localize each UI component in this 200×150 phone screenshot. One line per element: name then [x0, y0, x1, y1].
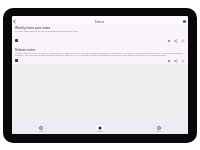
staticText: Chat	[97, 130, 102, 133]
button[interactable]: More	[181, 59, 185, 63]
button[interactable]: Weekly team sync notes	[12, 24, 188, 46]
button[interactable]: Star	[167, 39, 171, 43]
button[interactable]: Meet	[129, 122, 188, 134]
button[interactable]: Share	[174, 59, 178, 63]
button[interactable]: Share	[174, 39, 178, 43]
staticText: Mail	[39, 130, 44, 133]
staticText: A short description of the message previ…	[15, 29, 185, 32]
button[interactable]: Back	[12, 19, 17, 24]
button[interactable]: More	[181, 39, 185, 43]
staticText: Inbox	[95, 19, 105, 24]
staticText: Weekly team sync notes	[15, 26, 51, 30]
button[interactable]: Account	[182, 19, 187, 24]
staticText: Meet	[156, 130, 162, 133]
button[interactable]: Chat	[70, 122, 129, 134]
staticText: Lorem ipsum dolor sit amet, consectetur …	[15, 51, 187, 57]
button[interactable]: Mail	[12, 122, 70, 134]
button[interactable]: Star	[167, 59, 171, 63]
button[interactable]: Release notes	[12, 46, 188, 64]
staticText: Release notes	[15, 48, 36, 52]
